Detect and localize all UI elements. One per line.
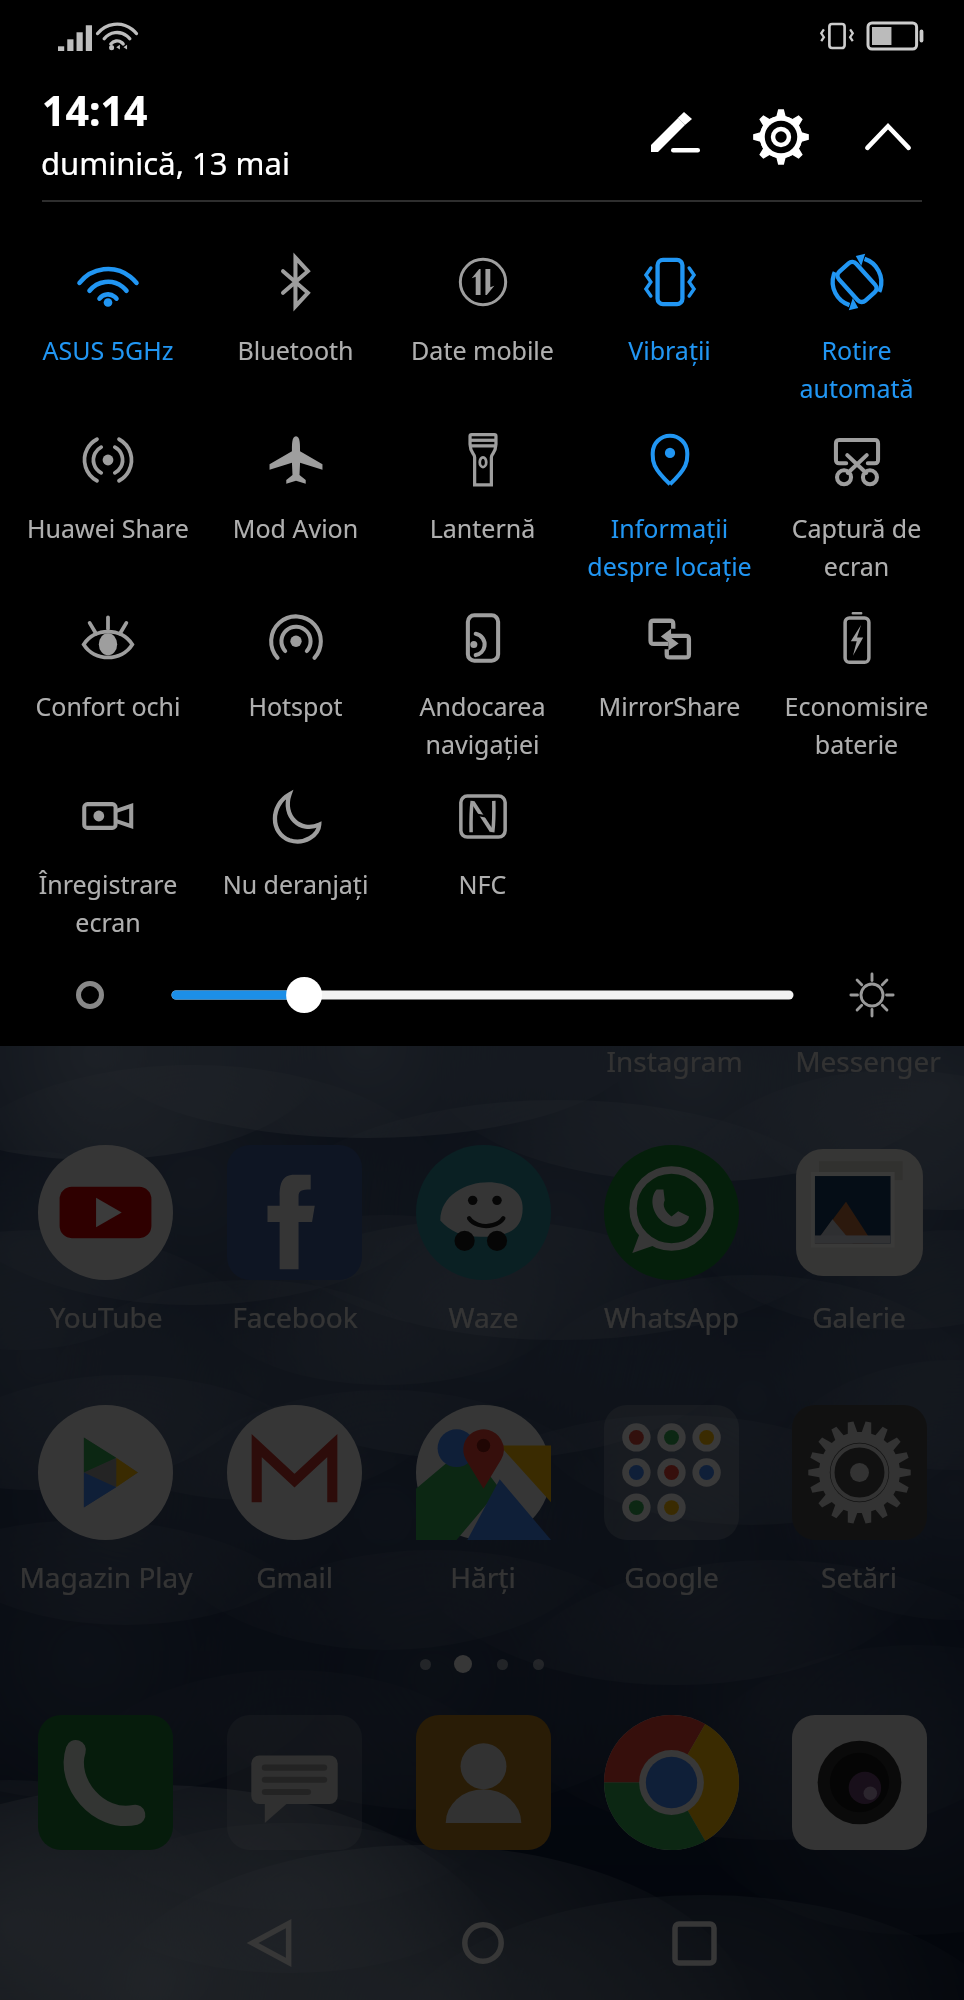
staticText: Instagram: [606, 1042, 743, 1080]
button[interactable]: Edit: [627, 89, 723, 185]
staticText: Galerie: [812, 1298, 906, 1336]
staticText: Bluetooth: [202, 333, 389, 367]
staticText: Lanternă: [389, 511, 576, 545]
button[interactable]: NFC: [389, 740, 576, 918]
staticText: Economisire baterie: [763, 689, 950, 761]
staticText: Gmail: [256, 1558, 333, 1596]
button[interactable]: [765, 1715, 953, 1850]
button[interactable]: [577, 1715, 765, 1850]
staticText: duminică, 13 mai: [41, 142, 290, 184]
button[interactable]: Waze: [389, 1145, 577, 1336]
button[interactable]: MirrorShare: [576, 562, 763, 740]
staticText: Huawei Share: [14, 511, 202, 545]
button[interactable]: ASUS 5GHz: [14, 206, 202, 384]
staticText: MirrorShare: [576, 689, 763, 723]
button[interactable]: Hotspot: [202, 562, 389, 740]
button[interactable]: Brightness: [840, 963, 904, 1027]
button[interactable]: Hărți: [389, 1405, 577, 1596]
staticText: Waze: [448, 1298, 519, 1336]
button[interactable]: [389, 1715, 577, 1850]
button[interactable]: Confort ochi: [14, 562, 202, 740]
staticText: Hotspot: [202, 689, 389, 723]
staticText: Setări: [821, 1558, 897, 1596]
staticText: Rotire automată: [763, 333, 950, 405]
staticText: Vibrații: [576, 333, 763, 367]
button[interactable]: Andocarea navigației: [389, 562, 576, 740]
button[interactable]: Back: [216, 1888, 326, 1998]
staticText: Andocarea navigației: [389, 689, 576, 761]
button[interactable]: Date mobile: [389, 206, 576, 384]
button[interactable]: [200, 1715, 389, 1850]
button[interactable]: Economisire baterie: [763, 562, 950, 740]
staticText: Magazin Play: [19, 1558, 193, 1596]
button[interactable]: Bluetooth: [202, 206, 389, 384]
staticText: Facebook: [232, 1298, 358, 1336]
button[interactable]: Informații despre locație: [576, 384, 763, 562]
button[interactable]: Gmail: [200, 1405, 389, 1596]
staticText: Înregistrare ecran: [14, 867, 202, 939]
staticText: Mod Avion: [202, 511, 389, 545]
button[interactable]: Settings: [733, 89, 829, 185]
button[interactable]: Facebook: [200, 1145, 389, 1336]
staticText: Confort ochi: [14, 689, 202, 723]
button[interactable]: Captură de ecran: [763, 384, 950, 562]
button[interactable]: Huawei Share: [14, 384, 202, 562]
button[interactable]: Lanternă: [389, 384, 576, 562]
staticText: NFC: [389, 867, 576, 901]
staticText: Nu deranjați: [202, 867, 389, 901]
button[interactable]: [11, 1715, 200, 1850]
staticText: YouTube: [49, 1298, 163, 1336]
button[interactable]: Rotire automată: [763, 206, 950, 384]
button[interactable]: Recents: [639, 1888, 749, 1998]
staticText: Informații despre locație: [576, 511, 763, 583]
button[interactable]: Google: [577, 1405, 765, 1596]
button[interactable]: Nu deranjați: [202, 740, 389, 918]
button[interactable]: Înregistrare ecran: [14, 740, 202, 918]
button[interactable]: WhatsApp: [577, 1145, 765, 1336]
staticText: ASUS 5GHz: [14, 333, 202, 367]
button[interactable]: Mod Avion: [202, 384, 389, 562]
staticText: Hărți: [450, 1558, 516, 1596]
staticText: 14:14: [42, 82, 148, 138]
staticText: Google: [624, 1558, 719, 1596]
button[interactable]: Vibrații: [576, 206, 763, 384]
button[interactable]: Auto brightness: [62, 967, 118, 1023]
button[interactable]: Home: [428, 1888, 538, 1998]
button[interactable]: Collapse: [840, 89, 936, 185]
button[interactable]: Magazin Play: [11, 1405, 200, 1596]
button[interactable]: Galerie: [765, 1145, 953, 1336]
button[interactable]: Setări: [765, 1405, 953, 1596]
staticText: Date mobile: [389, 333, 576, 367]
button[interactable]: [158, 955, 807, 1035]
staticText: Messenger: [795, 1042, 941, 1080]
staticText: Captură de ecran: [763, 511, 950, 583]
staticText: WhatsApp: [604, 1298, 739, 1336]
button[interactable]: YouTube: [11, 1145, 200, 1336]
